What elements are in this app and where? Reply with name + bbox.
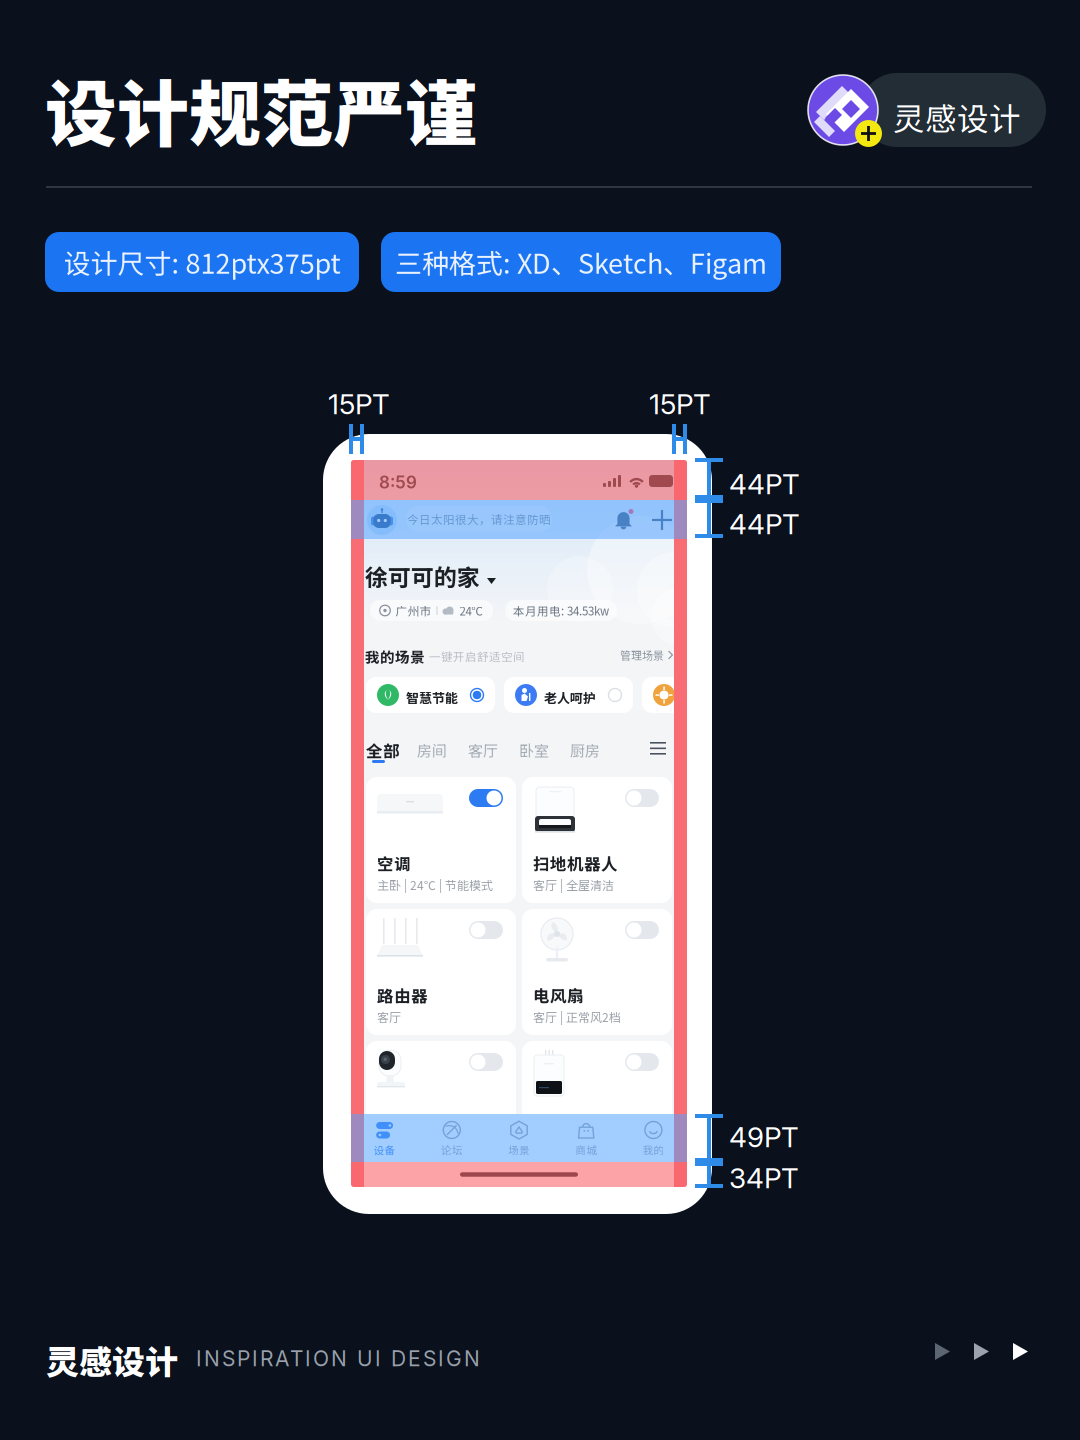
staticText: 设计规范严谨 [45,57,477,161]
staticText: 8:59 [379,472,417,493]
staticText: 44PT [729,507,800,541]
staticText: 设计尺寸: 812ptx375pt [63,242,340,282]
button[interactable]: 商城 [553,1114,620,1162]
staticText: 本月用电: 34.53kw [513,602,609,619]
staticText: 灵感设计 [893,94,1021,140]
button[interactable]: 设备 [351,1114,418,1162]
staticText: 扫地机器人 [533,851,618,875]
staticText: 设备 [374,1142,396,1157]
button[interactable]: 我的 [620,1114,687,1162]
button[interactable]: 客厅 [468,734,508,770]
staticText: 广州市 [395,602,431,619]
staticText: 电风扇 [533,983,584,1007]
staticText: 三种格式: XD、Sketch、Figam [395,242,767,282]
button[interactable] [366,1041,516,1167]
button[interactable]: 通知 [614,509,635,530]
button[interactable]: 电风扇 [522,909,672,1035]
button[interactable]: 场景 [485,1114,553,1162]
button[interactable]: 扫地机器人 [522,777,672,903]
staticText: 一键开启舒适空间 [429,648,525,665]
staticText: 商城 [575,1142,597,1157]
staticText: 论坛 [441,1142,463,1157]
button[interactable]: 三种格式: XD、Sketch、Figam [381,232,781,292]
staticText: 空调 [377,851,411,875]
staticText: 卧室 [519,739,549,761]
staticText: 管理场景 [620,647,664,663]
button[interactable]: 老人呵护 [504,677,633,713]
staticText: 15PT [649,387,711,421]
button[interactable]: 添加设备 [652,510,672,530]
staticText: 厨房 [570,739,600,761]
button[interactable]: 全部 [366,734,406,770]
staticText: 全部 [366,738,400,762]
staticText: 客厅 | 全屋清洁 [533,876,614,893]
button[interactable]: 语音助手 [366,504,398,536]
button[interactable]: 房间 [417,734,457,770]
button[interactable]: 路由器 [366,909,516,1035]
staticText: 49PT [729,1120,799,1154]
button[interactable]: 管理场景 [619,647,673,663]
staticText: 主卧 | 24℃ | 节能模式 [377,876,493,893]
staticText: 客厅 | 正常风2档 [533,1008,621,1025]
staticText: 徐可可的家 [365,559,480,593]
staticText: 客厅 [377,1008,401,1025]
staticText: 夏日清凉 [682,688,734,707]
staticText: 房间 [417,739,447,761]
staticText: 15PT [328,387,390,421]
staticText: 客厅 [468,739,498,761]
staticText: 老人呵护 [544,688,596,707]
staticText: 今日太阳很大，请注意防晒 [407,511,551,527]
staticText: 场景 [508,1142,530,1157]
staticText: 我的场景 [365,646,425,667]
staticText: INSPIRATION UI DESIGN [196,1346,480,1371]
button[interactable]: 厨房 [570,734,610,770]
button[interactable]: 卧室 [519,734,559,770]
button[interactable]: 空调 [366,777,516,903]
staticText: 路由器 [377,983,428,1007]
staticText: 24℃ [459,602,483,619]
button[interactable]: 论坛 [418,1114,485,1162]
button[interactable]: 夏日清凉 [642,677,771,713]
button[interactable]: 筛选 [650,742,676,768]
staticText: 34PT [729,1161,799,1195]
staticText: 44PT [729,467,800,501]
staticText: 灵感设计 [46,1336,178,1384]
button[interactable]: 徐可可的家 [365,561,515,591]
staticText: 智慧节能 [406,688,458,707]
button[interactable]: 灵感设计 [808,73,1048,151]
button[interactable] [522,1041,672,1167]
button[interactable]: 智慧节能 [366,677,495,713]
button[interactable]: 设计尺寸: 812ptx375pt [45,232,359,292]
staticText: 我的 [642,1142,664,1157]
